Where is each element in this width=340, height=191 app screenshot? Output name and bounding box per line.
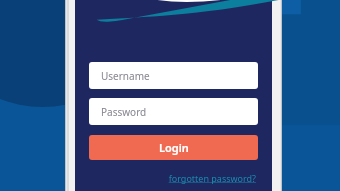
button[interactable]: Password (89, 98, 258, 125)
staticText: Login (159, 140, 189, 155)
button[interactable]: Login (89, 135, 258, 160)
button[interactable]: Username (89, 62, 258, 89)
staticText: Username (101, 69, 150, 83)
button[interactable]: forgotten password? (166, 170, 258, 186)
staticText: Password (101, 105, 147, 119)
staticText: forgotten password? (168, 172, 256, 184)
